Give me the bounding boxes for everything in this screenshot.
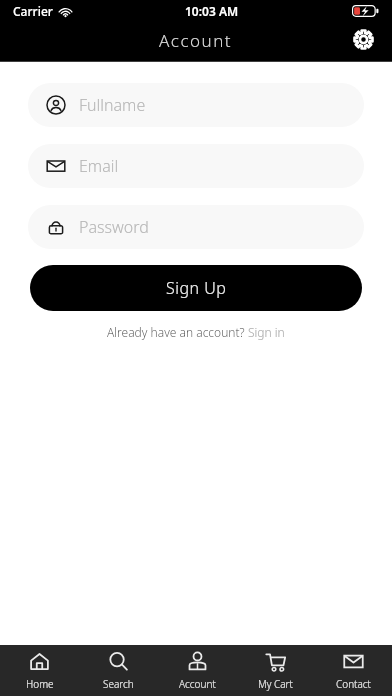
staticText: Already have an account? — [107, 324, 248, 340]
button[interactable]: Home — [0, 645, 79, 696]
button[interactable]: Password — [28, 205, 364, 249]
staticText: Password — [79, 216, 149, 238]
staticText: Email — [79, 155, 119, 177]
staticText: Fullname — [79, 94, 146, 116]
button[interactable]: Email — [28, 144, 364, 188]
button[interactable]: Settings — [346, 22, 380, 56]
button[interactable]: Fullname — [28, 83, 364, 127]
staticText: Carrier — [13, 3, 53, 19]
button[interactable]: Search — [79, 645, 158, 696]
staticText: Sign in — [248, 324, 285, 340]
staticText: Search — [103, 677, 134, 691]
button[interactable]: Account — [158, 645, 236, 696]
button[interactable]: Sign Up — [30, 265, 362, 311]
staticText: My Cart — [258, 677, 293, 691]
button[interactable]: My Cart — [236, 645, 314, 696]
staticText: Contact — [336, 677, 371, 691]
staticText: Home — [26, 677, 54, 691]
staticText: Account — [179, 677, 216, 691]
staticText: 10:03 AM — [185, 3, 239, 19]
staticText: Account — [159, 29, 233, 52]
button[interactable]: Sign in — [248, 324, 285, 340]
staticText: Sign Up — [166, 277, 227, 299]
button[interactable]: Contact — [314, 645, 392, 696]
